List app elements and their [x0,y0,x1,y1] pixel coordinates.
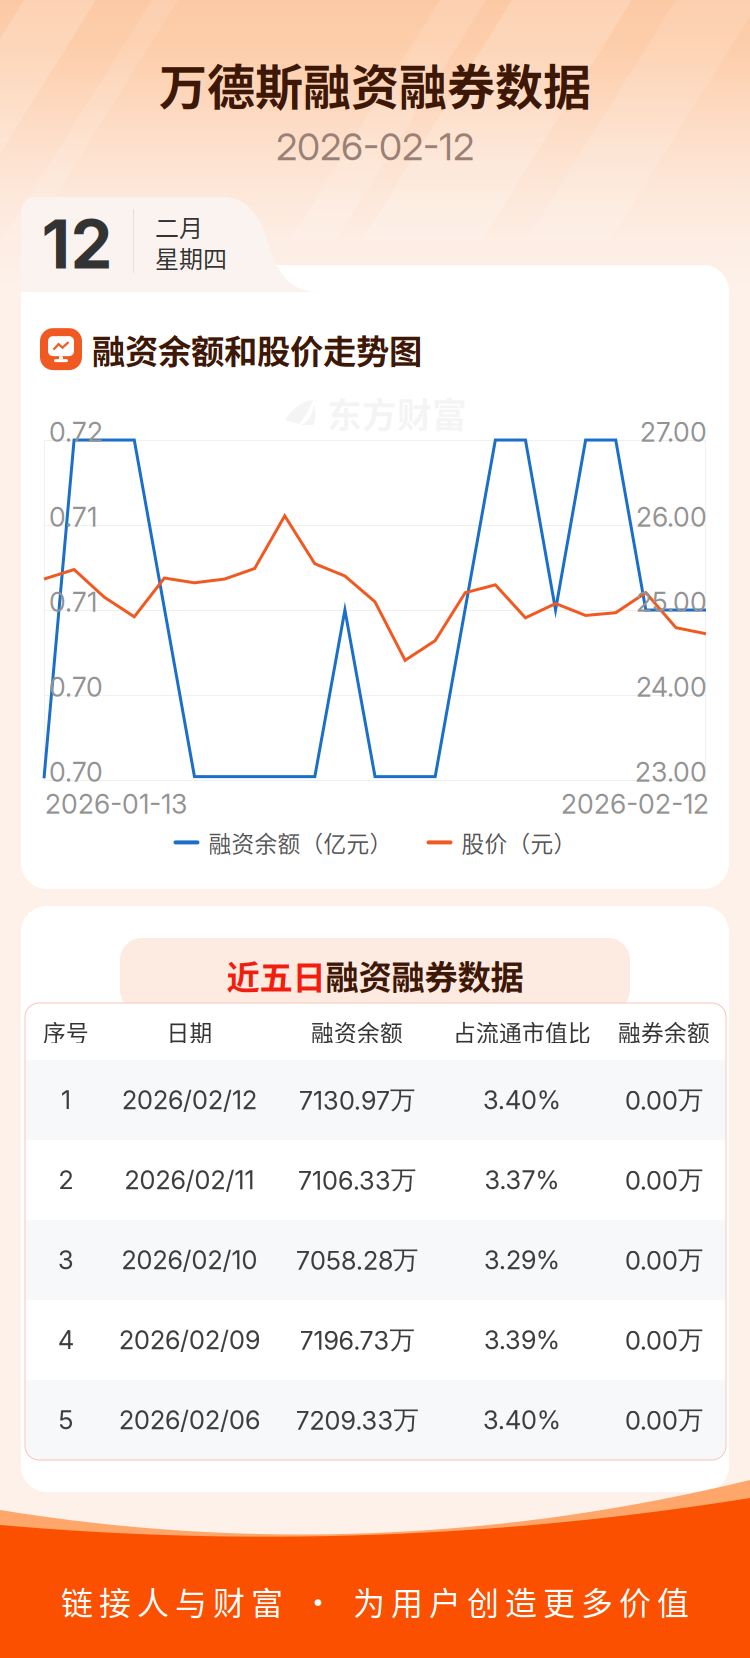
staticText: 27.00 [640,416,707,448]
staticText: 0.00万 [625,1084,703,1116]
staticText: 12 [41,204,112,285]
staticText: 0.70 [49,671,103,703]
staticText: 融资余额（亿元） [208,826,392,859]
staticText: 3.37% [484,1165,559,1195]
staticText: 融资余额和股价走势图 [92,325,422,373]
staticText: 融资余额 [311,1015,403,1048]
staticText: 日期 [166,1015,212,1048]
staticText: 3.40% [483,1085,561,1115]
staticText: 2026-02-12 [561,788,709,820]
staticText: 5 [58,1405,73,1435]
staticText: 融资融券数据 [325,951,523,999]
staticText: 东方财富 [327,388,467,438]
staticText: 近五日 [226,951,325,999]
staticText: 链接人与财富 · 为用户创造更多价值 [61,1578,689,1624]
staticText: 7209.33万 [295,1404,418,1436]
staticText: 0.70 [49,756,103,788]
staticText: 3 [58,1245,74,1275]
staticText: 24.00 [636,671,707,703]
staticText: 0.00万 [625,1164,703,1196]
staticText: 25.00 [636,586,707,618]
staticText: 2 [58,1165,73,1195]
staticText: 序号 [43,1015,89,1048]
staticText: 2026-01-13 [45,788,187,820]
staticText: 万德斯融资融券数据 [159,49,591,118]
staticText: 0.71 [49,501,97,533]
staticText: 7130.97万 [299,1084,415,1116]
staticText: 7106.33万 [298,1164,416,1196]
staticText: 占流通市值比 [453,1015,591,1048]
staticText: 0.00万 [625,1404,703,1436]
staticText: 0.72 [49,416,103,448]
staticText: 0.00万 [625,1324,703,1356]
staticText: 7196.73万 [299,1324,414,1356]
staticText: 2026/02/06 [119,1405,260,1435]
staticText: 2026/02/10 [121,1245,257,1275]
staticText: 2026-02-12 [276,124,474,169]
staticText: 7058.28万 [296,1244,418,1276]
staticText: 融券余额 [618,1015,710,1048]
staticText: 1 [61,1085,71,1115]
staticText: 二月 [155,209,203,244]
staticText: 26.00 [636,501,707,533]
staticText: 3.40% [483,1405,561,1435]
staticText: 3.29% [484,1245,560,1275]
staticText: 2026/02/11 [124,1165,254,1195]
staticText: 23.00 [635,756,707,788]
staticText: 3.39% [484,1325,560,1355]
staticText: 2026/02/09 [119,1325,260,1355]
staticText: 2026/02/12 [122,1085,257,1115]
staticText: 星期四 [155,240,227,275]
staticText: 0.71 [49,586,97,618]
staticText: 4 [58,1325,74,1355]
staticText: 0.00万 [625,1244,703,1276]
staticText: 股价（元） [461,826,576,859]
